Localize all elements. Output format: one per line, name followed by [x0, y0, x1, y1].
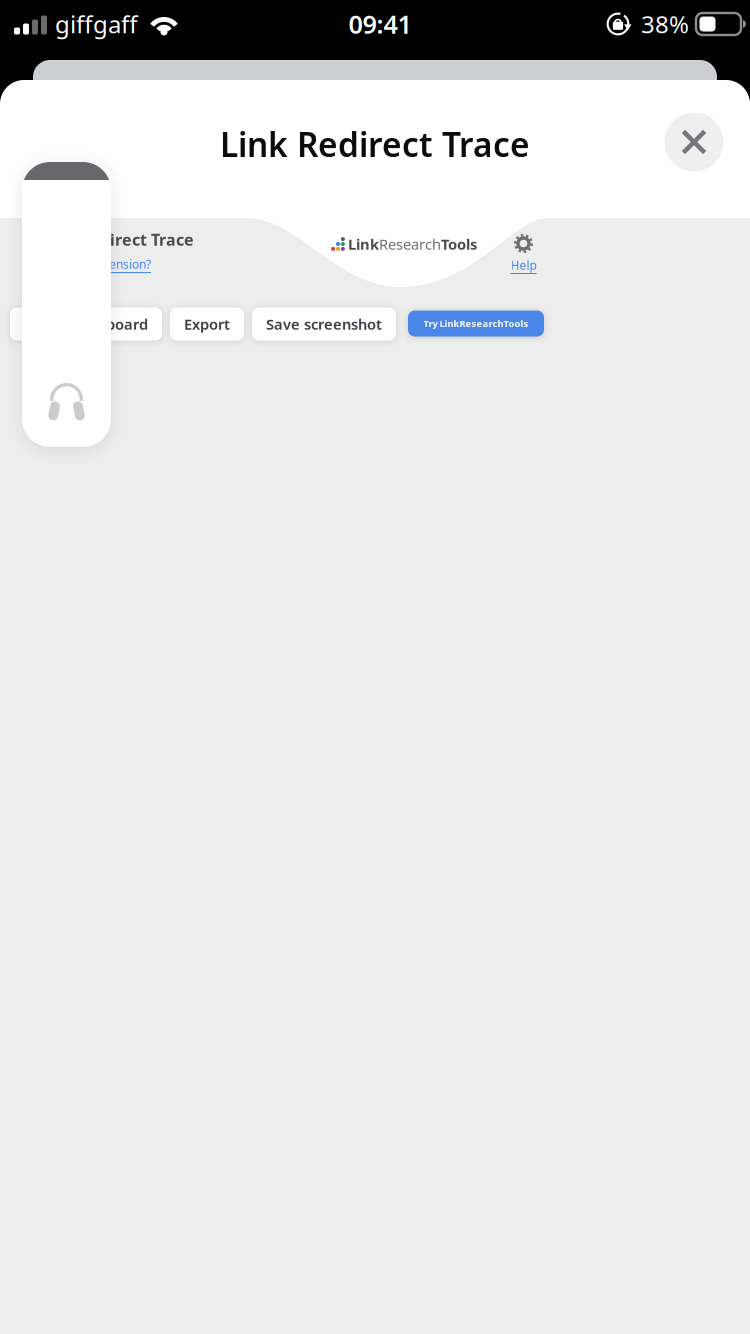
staticText: Copy to clipboard	[24, 314, 148, 334]
button[interactable]: Copy to clipboard	[10, 307, 162, 340]
staticText: Link Redirect Trace	[220, 122, 530, 166]
staticText: Link Redirect Trace	[42, 229, 194, 250]
staticText: Export	[184, 314, 230, 334]
button[interactable]: Save screenshot	[252, 307, 396, 340]
staticText: Link	[348, 234, 379, 254]
staticText: Research	[379, 234, 441, 254]
staticText: 38%	[641, 8, 689, 40]
staticText: giffgaff	[55, 8, 138, 40]
staticText: Help	[510, 257, 536, 273]
button[interactable]: Try LinkResearchTools	[408, 310, 544, 336]
button[interactable]: Help	[510, 234, 536, 274]
button[interactable]: Close	[664, 112, 723, 171]
button[interactable]: Export	[170, 307, 244, 340]
staticText: Save screenshot	[266, 314, 382, 334]
staticText: Try LinkResearchTools	[423, 317, 528, 330]
staticText: Why this extension?	[42, 256, 151, 272]
staticText: 09:41	[348, 7, 411, 41]
staticText: Tools	[441, 234, 477, 254]
